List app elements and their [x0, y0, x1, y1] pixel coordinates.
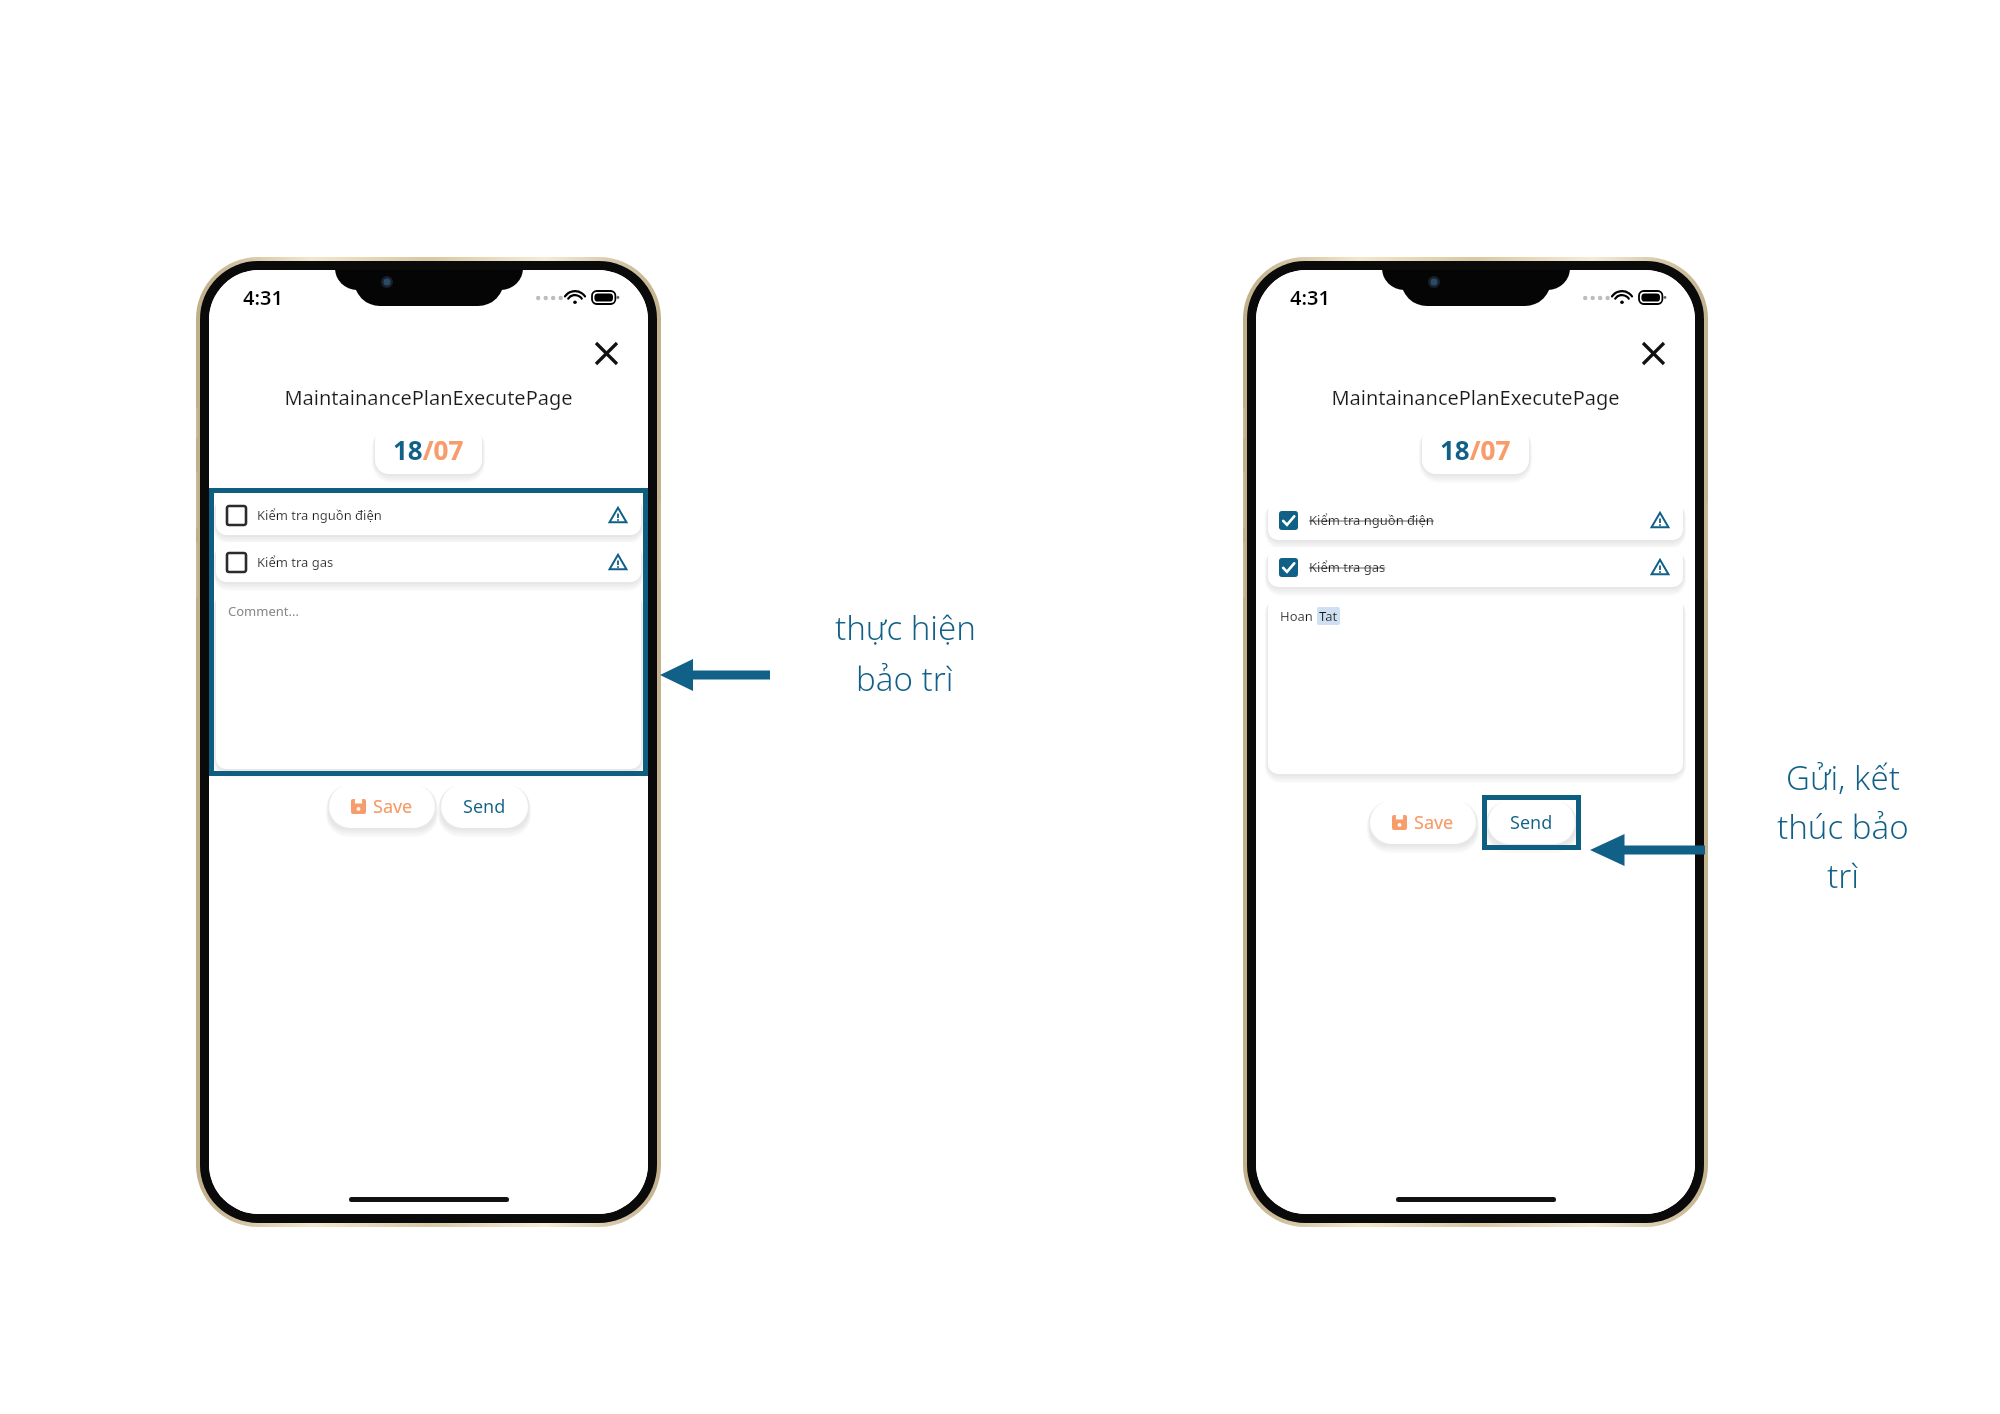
staticText: Save — [1414, 810, 1454, 835]
button[interactable]: Warning — [606, 550, 630, 574]
staticText: trì — [1827, 853, 1859, 898]
button[interactable]: 18/07 — [375, 425, 482, 474]
staticText: MaintainancePlanExecutePage — [209, 384, 648, 411]
staticText: Comment... — [228, 602, 299, 620]
button[interactable]: Close — [586, 333, 626, 373]
staticText: MaintainancePlanExecutePage — [1256, 384, 1695, 411]
staticText: Send — [1510, 810, 1553, 835]
button[interactable]: Close — [1633, 333, 1673, 373]
staticText: Kiểm tra gas — [257, 553, 334, 571]
staticText: 4:31 — [1290, 284, 1330, 311]
staticText: Kiểm tra nguồn điện — [1309, 511, 1434, 529]
staticText: Send — [463, 794, 506, 819]
staticText: bảo trì — [856, 656, 954, 701]
staticText: thực hiện — [835, 605, 976, 650]
button[interactable]: Warning — [1648, 555, 1672, 579]
button[interactable]: Save — [1370, 801, 1476, 844]
button[interactable]: Comment... — [216, 591, 641, 769]
button[interactable]: Warning — [606, 503, 630, 527]
staticText: 4:31 — [243, 284, 283, 311]
staticText: thúc bảo — [1777, 804, 1909, 849]
button[interactable]: Send — [441, 785, 528, 828]
staticText: Save — [373, 794, 413, 819]
button[interactable]: Kiểm tra gas — [216, 542, 641, 582]
button[interactable]: Hoan — [1268, 596, 1683, 774]
button[interactable]: Kiểm tra nguồn điện — [216, 495, 641, 535]
button[interactable]: Kiểm tra gas — [1268, 547, 1683, 587]
staticText: Kiểm tra nguồn điện — [257, 506, 382, 524]
staticText: Kiểm tra gas — [1309, 558, 1386, 576]
staticText: Tat — [1319, 607, 1338, 625]
button[interactable]: Save — [329, 785, 435, 828]
staticText: Hoan — [1280, 607, 1317, 625]
staticText: 18/07 — [1440, 432, 1511, 467]
staticText: 18/07 — [393, 432, 464, 467]
button[interactable]: Send — [1488, 801, 1575, 844]
button[interactable]: Kiểm tra nguồn điện — [1268, 500, 1683, 540]
button[interactable]: 18/07 — [1422, 425, 1529, 474]
button[interactable]: Warning — [1648, 508, 1672, 532]
staticText: Gửi, kết — [1786, 755, 1900, 800]
